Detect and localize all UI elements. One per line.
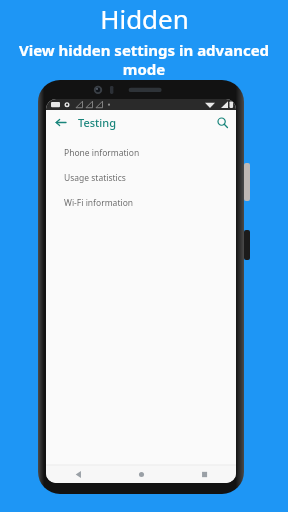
- staticText: View hidden settings in advanced mode: [6, 40, 282, 79]
- button[interactable]: Back: [46, 465, 110, 483]
- button[interactable]: Phone information: [46, 140, 236, 165]
- staticText: Usage statistics: [64, 172, 126, 184]
- button[interactable]: Recents: [173, 465, 236, 483]
- staticText: Phone information: [64, 147, 140, 159]
- staticText: Testing: [78, 115, 116, 130]
- button[interactable]: Usage statistics: [46, 165, 236, 190]
- button[interactable]: Home: [110, 465, 173, 483]
- staticText: Wi-Fi information: [64, 197, 134, 209]
- button[interactable]: Back: [51, 113, 69, 131]
- staticText: Hidden: [100, 1, 189, 36]
- button[interactable]: Wi-Fi information: [46, 190, 236, 215]
- button[interactable]: Search: [213, 113, 231, 131]
